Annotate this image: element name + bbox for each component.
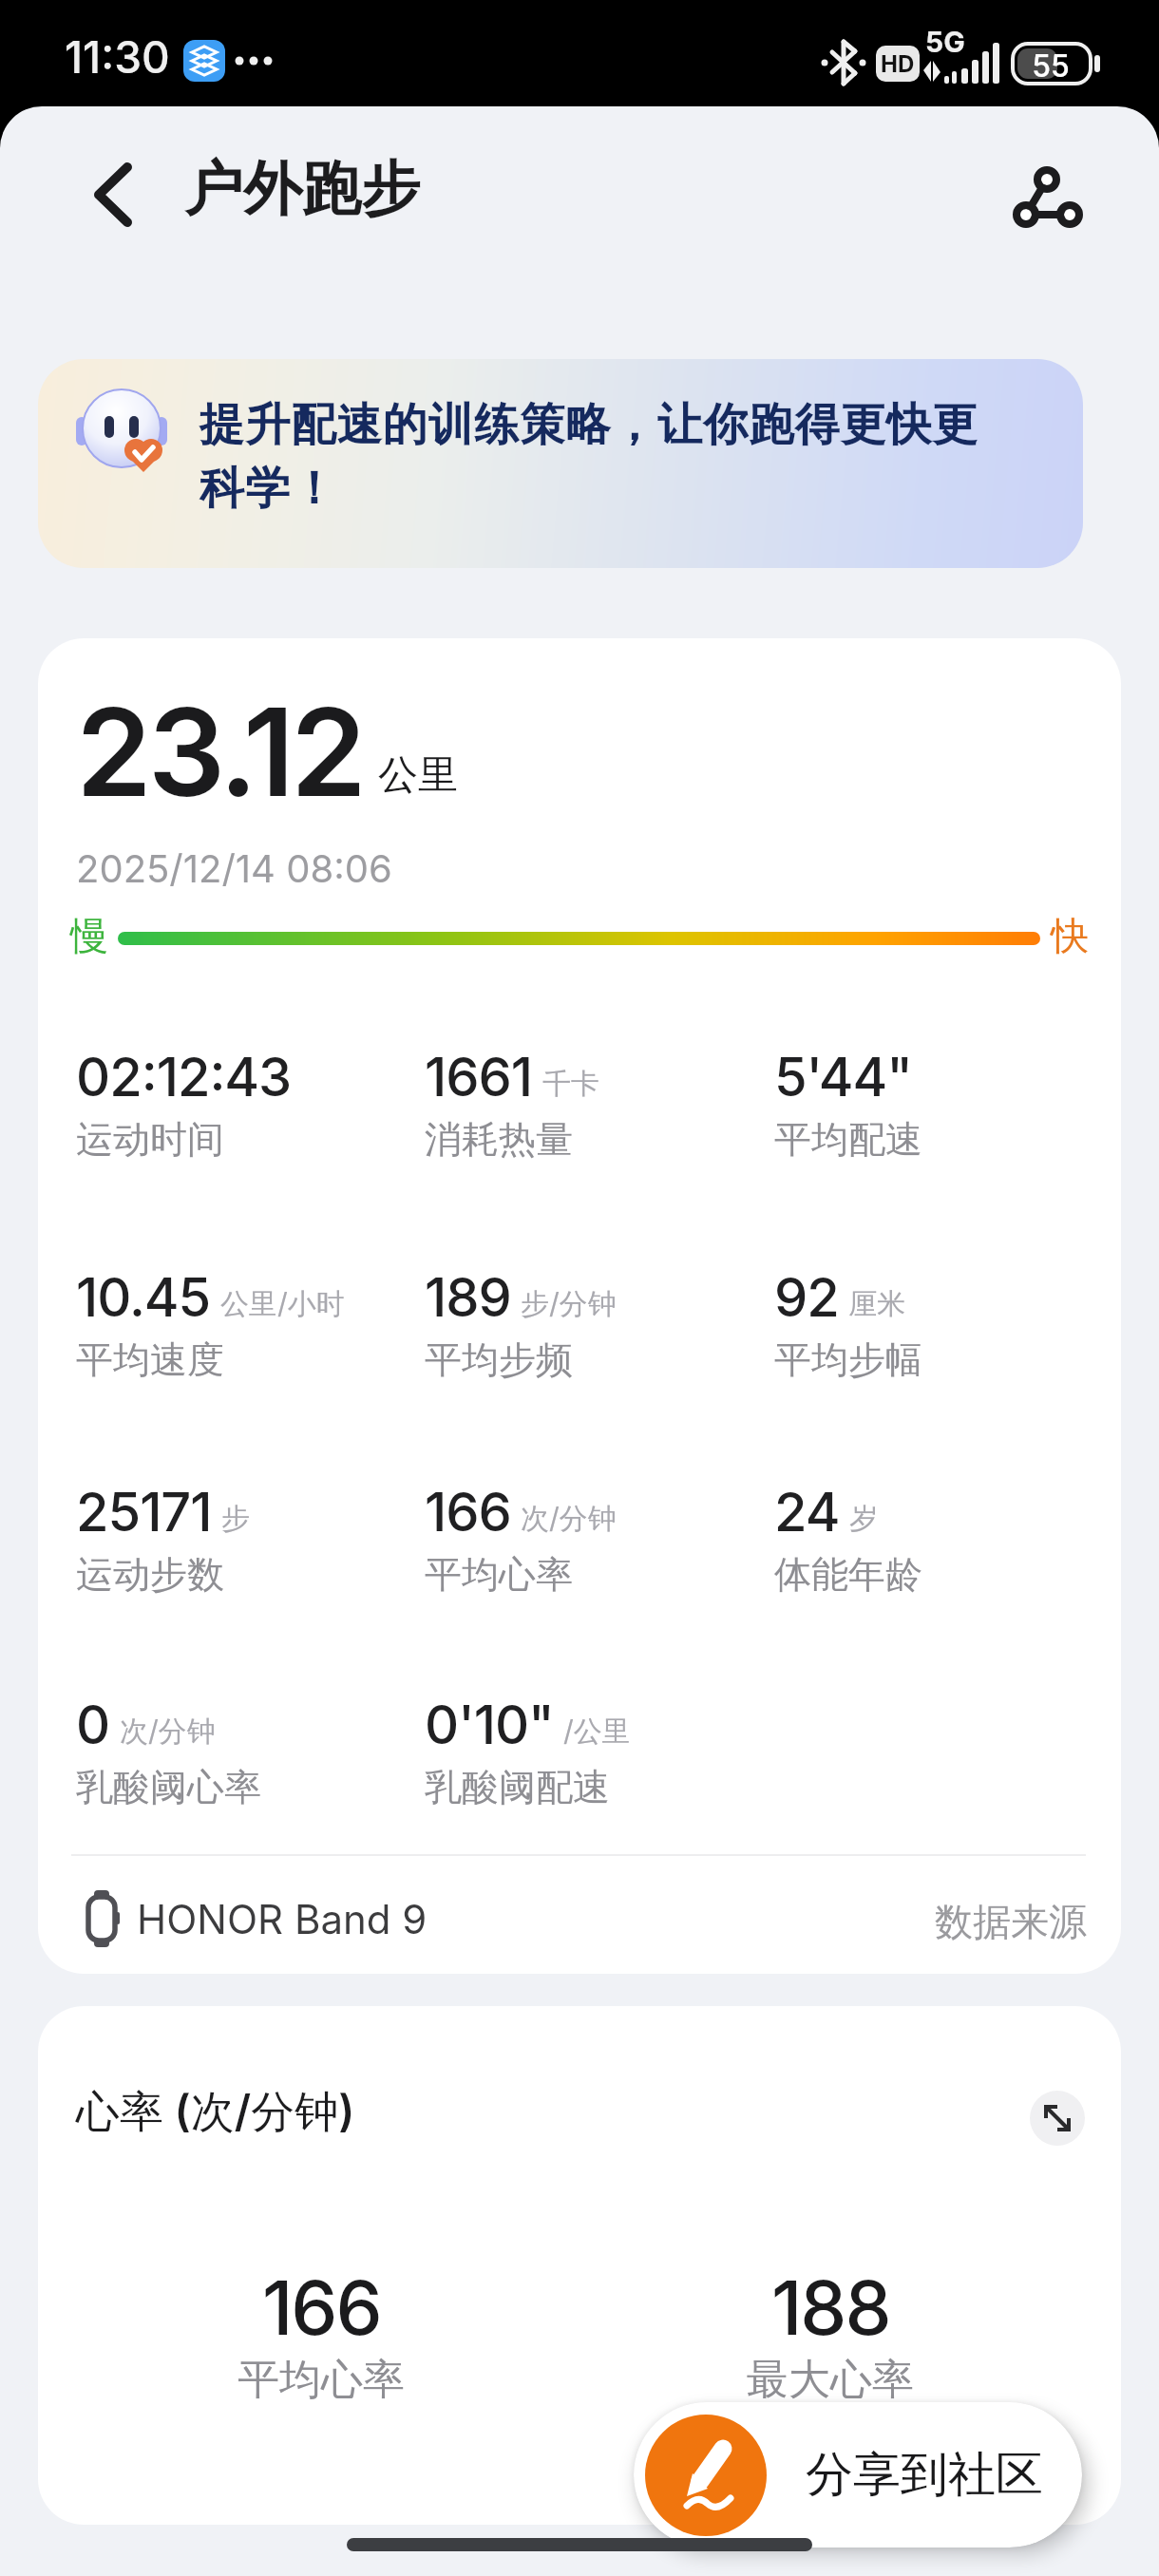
staticText: 平均配速 (774, 1116, 922, 1163)
staticText: 189 (425, 1265, 511, 1330)
staticText: 提升配速的训练策略，让你跑得更快更 科学！ (199, 397, 978, 517)
staticText: 0'10" (425, 1693, 554, 1757)
staticText: 25171 (76, 1480, 212, 1544)
staticText: 最大心率 (747, 2354, 914, 2406)
staticText: 5G (925, 25, 965, 59)
button[interactable] (1005, 158, 1081, 230)
staticText: 次/分钟 (120, 1714, 216, 1750)
staticText: 乳酸阈心率 (76, 1764, 261, 1810)
button[interactable]: HONOR Band 9 (84, 1890, 427, 1947)
staticText: 心率 (次/分钟) (76, 2084, 355, 2139)
button[interactable] (1030, 2091, 1085, 2146)
staticText: 运动步数 (76, 1551, 224, 1598)
staticText: 岁 (849, 1501, 878, 1537)
button[interactable]: 分享到社区 (634, 2402, 1082, 2548)
staticText: 厘米 (848, 1286, 905, 1322)
staticText: 户外跑步 (184, 152, 420, 226)
staticText: 166 (425, 1480, 511, 1544)
staticText: 23.12 (76, 678, 363, 825)
staticText: 1661 (425, 1045, 533, 1109)
staticText: 步 (221, 1501, 250, 1537)
staticText: 2025/12/14 08:06 (76, 845, 392, 891)
staticText: HD (881, 50, 915, 78)
staticText: 慢 (70, 912, 108, 959)
staticText: 5'44" (774, 1045, 912, 1109)
staticText: 平均速度 (76, 1336, 224, 1383)
button[interactable]: 数据来源 (935, 1898, 1087, 1945)
staticText: 分享到社区 (806, 2445, 1043, 2505)
staticText: 11:30 (65, 30, 170, 84)
staticText: 02:12:43 (76, 1045, 292, 1109)
staticText: 消耗热量 (425, 1116, 573, 1163)
staticText: 平均步幅 (774, 1336, 922, 1383)
staticText: 公里/小时 (220, 1286, 345, 1322)
staticText: 体能年龄 (774, 1551, 922, 1598)
staticText: 快 (1051, 912, 1089, 959)
staticText: HONOR Band 9 (137, 1895, 427, 1943)
staticText: 公里 (378, 750, 458, 801)
button[interactable]: 提升配速的训练策略，让你跑得更快更 科学！ (38, 359, 1083, 568)
staticText: 55 (1024, 47, 1077, 85)
staticText: 千卡 (542, 1066, 599, 1102)
staticText: /公里 (563, 1714, 631, 1750)
staticText: 92 (774, 1265, 839, 1330)
staticText: 24 (774, 1480, 840, 1544)
button[interactable] (91, 163, 133, 228)
staticText: 平均步频 (425, 1336, 573, 1383)
staticText: 乳酸阈配速 (425, 1764, 610, 1810)
staticText: 188 (771, 2263, 890, 2352)
staticText: 运动时间 (76, 1116, 224, 1163)
staticText: 次/分钟 (521, 1501, 617, 1537)
staticText: 平均心率 (237, 2354, 405, 2406)
staticText: 0 (76, 1693, 110, 1757)
staticText: 166 (262, 2263, 381, 2352)
staticText: 10.45 (76, 1265, 211, 1330)
staticText: 步/分钟 (521, 1286, 617, 1322)
staticText: 平均心率 (425, 1551, 573, 1598)
